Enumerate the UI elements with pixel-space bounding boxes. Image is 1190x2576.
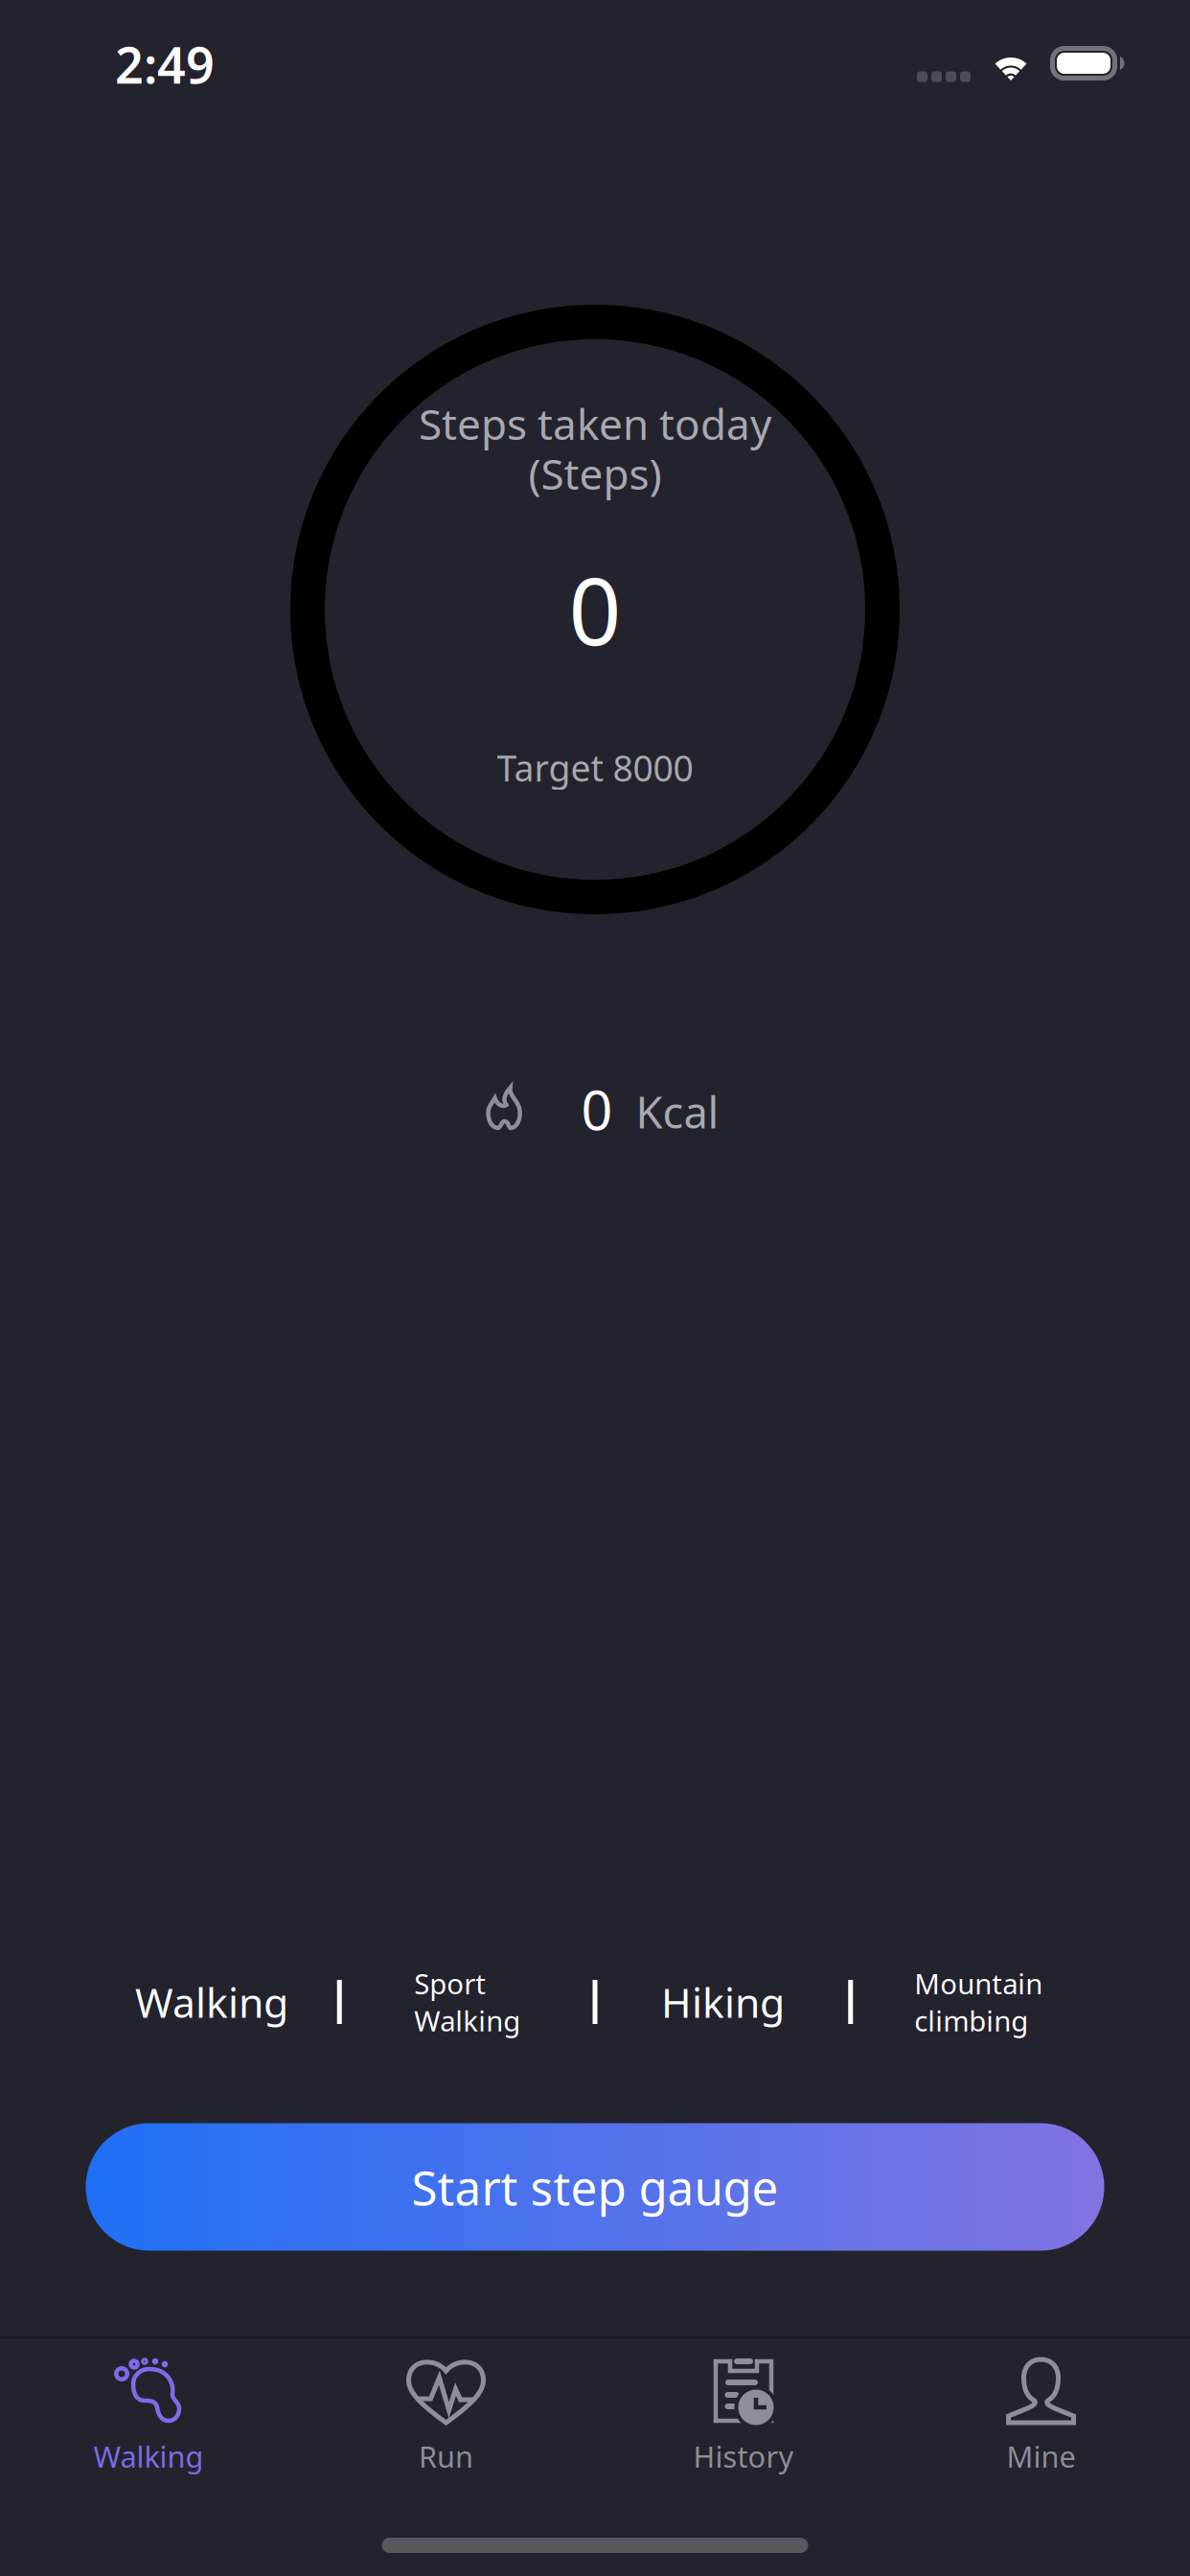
staticText: Hiking [661, 1975, 785, 2029]
button[interactable]: Run [297, 2336, 595, 2576]
staticText: Walking [135, 1975, 288, 2029]
button[interactable]: Sport Walking [342, 1949, 593, 2055]
staticText: Start step gauge [412, 2155, 778, 2218]
staticText: Kcal [636, 1083, 719, 1141]
button[interactable]: Start step gauge [86, 2123, 1104, 2251]
button[interactable]: Walking [0, 2336, 297, 2576]
staticText: Mountain climbing [914, 1965, 1043, 2039]
staticText: Walking [93, 2437, 204, 2476]
button[interactable]: Mountain climbing [853, 1949, 1104, 2055]
staticText: Sport Walking [414, 1965, 520, 2039]
staticText: Steps taken today [419, 396, 771, 452]
staticText: 2:49 [115, 31, 215, 97]
button[interactable]: Hiking [597, 1949, 848, 2055]
button[interactable]: History [595, 2336, 892, 2576]
staticText: History [693, 2437, 794, 2476]
staticText: Target 8000 [497, 744, 693, 791]
staticText: Run [419, 2437, 473, 2476]
staticText: Mine [1007, 2437, 1076, 2476]
button[interactable]: Mine [892, 2336, 1190, 2576]
staticText: (Steps) [528, 445, 662, 501]
button[interactable]: Walking [86, 1949, 337, 2055]
staticText: 0 [569, 548, 621, 671]
staticText: 0 [581, 1072, 613, 1145]
